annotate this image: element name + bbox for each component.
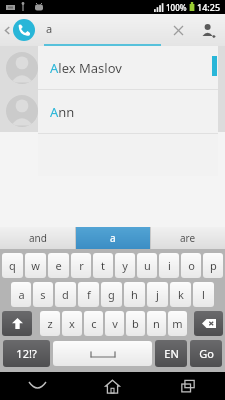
button[interactable]: y [115, 253, 135, 278]
staticText: t [101, 258, 105, 273]
button[interactable]: k [170, 282, 191, 307]
staticText: x [69, 316, 75, 331]
button[interactable]: a [11, 282, 31, 307]
button[interactable]: r [71, 253, 91, 278]
staticText: a [18, 287, 25, 302]
button[interactable]: Alex Maslov [38, 46, 218, 89]
staticText: d [62, 287, 69, 302]
staticText: a [110, 231, 116, 245]
button[interactable]: Go [190, 340, 222, 367]
button[interactable]: d [55, 282, 76, 307]
button[interactable]: l [193, 282, 214, 307]
button[interactable]: i [159, 253, 179, 278]
staticText: r [79, 258, 84, 273]
staticText: q [9, 258, 16, 273]
staticText: a [46, 21, 53, 36]
button[interactable]: j [147, 282, 168, 307]
staticText: m [172, 316, 183, 331]
button[interactable]: Shift [2, 311, 32, 336]
button[interactable]: 12!? [3, 340, 50, 367]
button[interactable]: EN [155, 340, 187, 367]
staticText: y [122, 258, 128, 273]
staticText: n [153, 316, 160, 331]
staticText: i [168, 258, 171, 273]
staticText: b [132, 316, 139, 331]
staticText: are [180, 231, 196, 245]
staticText: p [210, 258, 217, 273]
button[interactable]: q [2, 253, 23, 278]
button[interactable]: c [84, 311, 103, 336]
staticText: j [156, 287, 159, 302]
staticText: o [188, 258, 195, 273]
staticText: w [31, 258, 40, 273]
staticText: c [91, 316, 97, 331]
staticText: h [131, 287, 138, 302]
button[interactable]: Add contact [191, 14, 225, 46]
button[interactable]: n [147, 311, 166, 336]
staticText: u [144, 258, 151, 273]
button[interactable]: v [105, 311, 124, 336]
staticText: l [202, 287, 205, 302]
staticText: Ann [50, 103, 75, 121]
staticText: 12!? [16, 346, 37, 361]
button[interactable]: u [137, 253, 157, 278]
staticText: Alex Maslov [50, 59, 122, 77]
button[interactable]: m [168, 311, 187, 336]
staticText: e [55, 258, 62, 273]
button[interactable]: o [181, 253, 201, 278]
button[interactable]: f [78, 282, 99, 307]
staticText: 100% [166, 2, 187, 13]
button[interactable]: g [101, 282, 122, 307]
staticText: f [87, 287, 91, 302]
button[interactable]: and [0, 227, 75, 249]
button[interactable]: Space [53, 341, 152, 366]
staticText: v [112, 316, 118, 331]
button[interactable]: h [124, 282, 145, 307]
button[interactable]: p [203, 253, 223, 278]
staticText: 14:25 [197, 1, 221, 13]
button[interactable]: Home [75, 372, 150, 400]
button[interactable]: Back [0, 14, 38, 46]
button[interactable] [0, 46, 225, 89]
staticText: and [29, 231, 47, 245]
button[interactable]: x [62, 311, 82, 336]
button[interactable]: Backspace [194, 311, 223, 336]
staticText: z [47, 316, 53, 331]
button[interactable]: Recent apps [150, 372, 225, 400]
staticText: s [40, 287, 46, 302]
button[interactable]: Ann [38, 90, 218, 133]
button[interactable]: w [25, 253, 46, 278]
staticText: EN [164, 346, 179, 361]
button[interactable]: t [93, 253, 113, 278]
button[interactable]: Clear search [165, 14, 191, 46]
button[interactable]: z [40, 311, 60, 336]
button[interactable]: s [33, 282, 53, 307]
button[interactable]: b [126, 311, 145, 336]
button[interactable]: are [151, 227, 225, 249]
staticText: Go [199, 346, 214, 361]
button[interactable]: Hide keyboard [0, 372, 75, 400]
button[interactable] [0, 89, 225, 132]
staticText: g [108, 287, 115, 302]
button[interactable]: a [38, 14, 165, 46]
staticText: k [178, 287, 184, 302]
button[interactable]: e [48, 253, 69, 278]
button[interactable]: a [76, 227, 150, 249]
